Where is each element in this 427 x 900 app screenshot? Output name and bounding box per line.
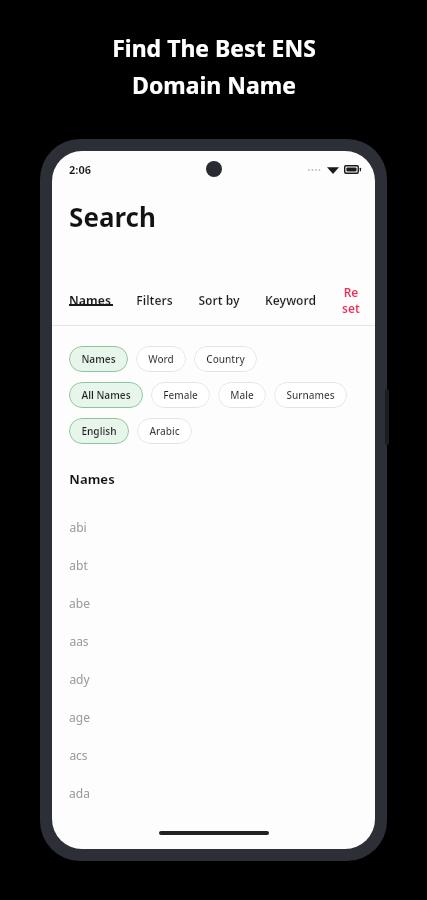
staticText: ady xyxy=(69,671,90,687)
staticText: acs xyxy=(69,747,88,763)
button[interactable]: Male xyxy=(218,382,266,408)
button[interactable]: Country xyxy=(194,346,257,372)
button[interactable]: Names xyxy=(69,346,128,372)
button[interactable]: Sort by xyxy=(198,290,240,310)
staticText: Arabic xyxy=(149,424,180,438)
button[interactable]: aas xyxy=(52,622,375,660)
staticText: abt xyxy=(69,557,88,573)
staticText: abe xyxy=(69,595,90,611)
button[interactable]: Names xyxy=(69,290,111,310)
button[interactable]: acs xyxy=(52,736,375,774)
staticText: English xyxy=(81,424,117,438)
staticText: Names xyxy=(69,292,111,308)
staticText: Domain Name xyxy=(132,69,296,100)
staticText: age xyxy=(69,709,90,725)
button[interactable]: age xyxy=(52,698,375,736)
button[interactable]: Surnames xyxy=(274,382,347,408)
staticText: aas xyxy=(69,633,89,649)
staticText: Names xyxy=(81,352,116,366)
staticText: Male xyxy=(230,388,254,402)
staticText: All Names xyxy=(81,388,131,402)
staticText: Find The Best ENS xyxy=(112,32,316,63)
button[interactable]: abe xyxy=(52,584,375,622)
staticText: 2:06 xyxy=(69,162,91,177)
button[interactable]: English xyxy=(69,418,129,444)
button[interactable]: ada xyxy=(52,774,375,812)
button[interactable]: abt xyxy=(52,546,375,584)
staticText: Search xyxy=(69,199,156,234)
button[interactable]: Word xyxy=(136,346,186,372)
staticText: Filters xyxy=(136,292,173,308)
staticText: Female xyxy=(163,388,198,402)
button[interactable]: Filters xyxy=(136,290,173,310)
staticText: Country xyxy=(206,352,245,366)
button[interactable]: abi xyxy=(52,508,375,546)
staticText: Names xyxy=(69,470,115,488)
button[interactable]: Reset xyxy=(341,282,361,318)
button[interactable]: Keyword xyxy=(265,290,316,310)
staticText: Word xyxy=(148,352,174,366)
button[interactable]: All Names xyxy=(69,382,143,408)
staticText: Sort by xyxy=(198,292,240,308)
staticText: Surnames xyxy=(286,388,335,402)
staticText: abi xyxy=(69,519,87,535)
button[interactable]: Arabic xyxy=(137,418,192,444)
staticText: ada xyxy=(69,785,90,801)
staticText: Keyword xyxy=(265,292,316,308)
button[interactable]: ady xyxy=(52,660,375,698)
button[interactable]: Female xyxy=(151,382,210,408)
staticText: Reset xyxy=(341,284,361,316)
